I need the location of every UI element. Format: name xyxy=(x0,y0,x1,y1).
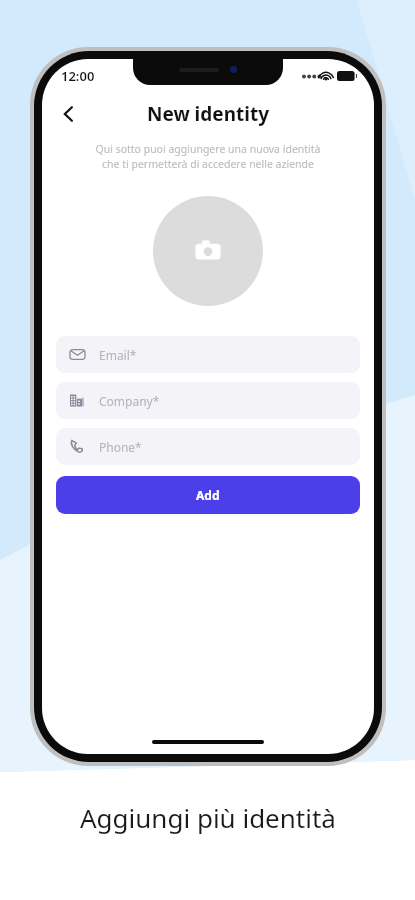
staticText: New identity xyxy=(147,101,270,127)
button[interactable]: Add photo xyxy=(153,196,263,306)
staticText: Add xyxy=(196,487,220,503)
button[interactable]: Email* xyxy=(56,336,360,373)
button[interactable]: Add xyxy=(56,476,360,514)
staticText: Email* xyxy=(99,347,137,363)
staticText: Company* xyxy=(99,393,160,409)
button[interactable]: Company* xyxy=(56,382,360,419)
staticText: 12:00 xyxy=(61,67,95,85)
button[interactable]: Phone* xyxy=(56,428,360,465)
staticText: Aggiungi più identità xyxy=(80,800,336,835)
staticText: Phone* xyxy=(99,439,142,455)
staticText: Qui sotto puoi aggiungere una nuova iden… xyxy=(56,142,360,171)
button[interactable]: Back xyxy=(50,95,88,133)
